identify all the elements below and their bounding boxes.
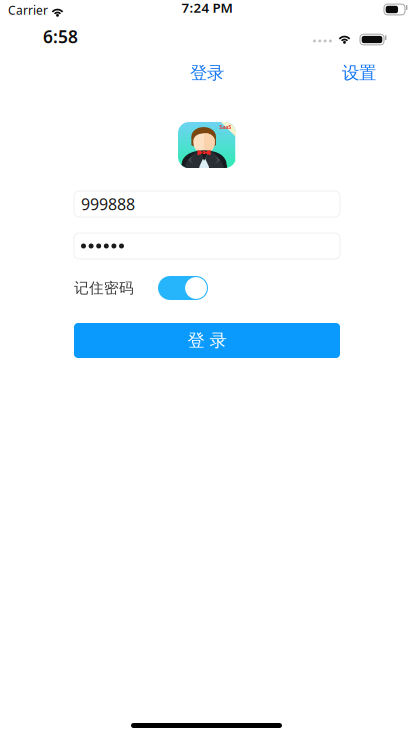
button[interactable]: 登录 <box>167 64 247 82</box>
staticText: Carrier <box>8 2 48 18</box>
staticText: 6:58 <box>43 25 78 48</box>
staticText: 7:24 PM <box>181 0 232 16</box>
staticText: 登 录 <box>187 330 226 351</box>
staticText: 设置 <box>342 62 376 84</box>
button[interactable]: 登 录 <box>74 323 340 358</box>
button[interactable]: 999888 <box>74 191 340 217</box>
staticText: SaaS <box>219 123 231 130</box>
staticText: 记住密码 <box>74 279 134 297</box>
button[interactable] <box>74 233 340 259</box>
staticText: 登录 <box>190 62 224 84</box>
staticText: 999888 <box>81 193 135 215</box>
button[interactable]: Remember password <box>158 276 208 300</box>
button[interactable]: 设置 <box>320 64 376 82</box>
